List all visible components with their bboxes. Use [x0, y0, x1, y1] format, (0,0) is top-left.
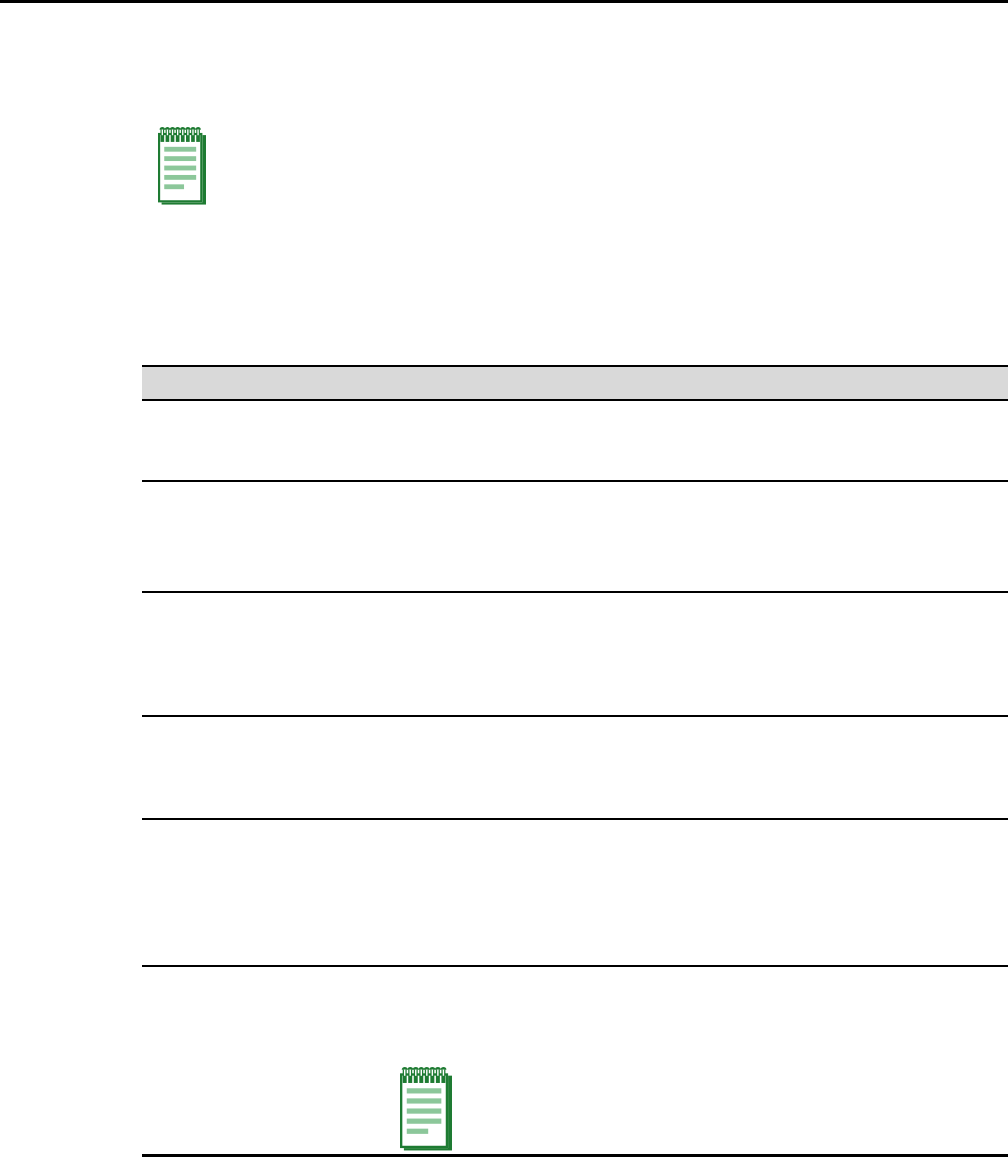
- button[interactable]: Note: [400, 1068, 452, 1152]
- button[interactable]: Note: [158, 128, 206, 206]
